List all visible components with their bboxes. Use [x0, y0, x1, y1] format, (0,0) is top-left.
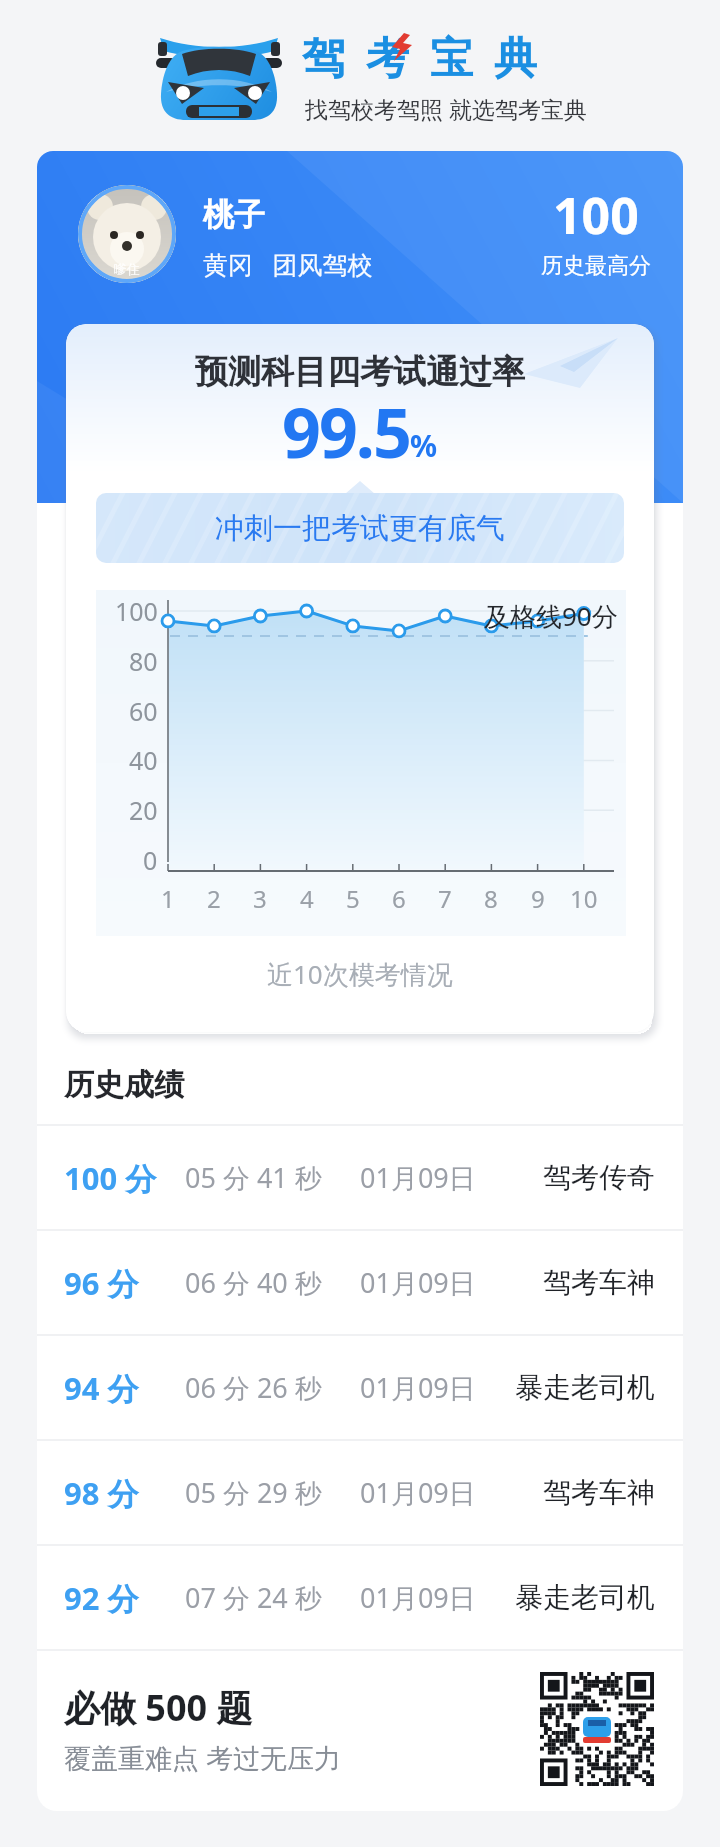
staticText: 7	[438, 882, 452, 914]
staticText: 8	[484, 882, 498, 914]
staticText: 06 分 40 秒	[185, 1264, 322, 1301]
staticText: 黄冈 团风驾校	[203, 247, 373, 281]
staticText: 60	[129, 694, 158, 728]
staticText: 桃子	[203, 195, 265, 234]
staticText: 01月09日	[360, 1159, 476, 1196]
staticText: 嗲住	[114, 261, 140, 277]
button[interactable]: 嗲住	[78, 185, 176, 283]
staticText: 驾考车神	[543, 1265, 655, 1300]
staticText: 近10次模考情况	[267, 956, 453, 992]
button[interactable]: 96 分	[37, 1231, 683, 1334]
staticText: 找驾校考驾照 就选驾考宝典	[305, 93, 587, 124]
staticText: 驾	[302, 32, 345, 86]
staticText: 98 分	[64, 1472, 139, 1514]
staticText: 覆盖重难点 考过无压力	[64, 1739, 342, 1776]
button[interactable]: 必做 500 题	[37, 1651, 683, 1811]
button[interactable]: 94 分	[37, 1336, 683, 1439]
staticText: 20	[129, 793, 158, 827]
staticText: 94 分	[64, 1367, 139, 1409]
staticText: %	[410, 425, 438, 466]
staticText: 99.5	[282, 385, 410, 478]
staticText: 宝	[430, 32, 473, 86]
staticText: 6	[392, 882, 406, 914]
staticText: 100 分	[64, 1157, 157, 1199]
staticText: 3	[253, 882, 267, 914]
staticText: 01月09日	[360, 1579, 476, 1616]
staticText: 5	[346, 882, 360, 914]
staticText: 2	[207, 882, 221, 914]
staticText: 07 分 24 秒	[185, 1579, 322, 1616]
staticText: 冲刺一把考试更有底气	[215, 510, 505, 547]
staticText: 100	[553, 181, 639, 243]
staticText: 预测科目四考试通过率	[195, 351, 525, 393]
staticText: 80	[129, 644, 158, 678]
button[interactable]: 冲刺一把考试更有底气	[96, 493, 624, 563]
staticText: 06 分 26 秒	[185, 1369, 322, 1406]
button[interactable]: 100 分	[37, 1126, 683, 1229]
staticText: 0	[143, 843, 158, 877]
staticText: 05 分 29 秒	[185, 1474, 322, 1511]
staticText: 及格线90分	[484, 598, 618, 634]
staticText: 驾考车神	[543, 1475, 655, 1510]
staticText: 典	[494, 32, 537, 86]
staticText: 40	[129, 743, 158, 777]
staticText: 4	[300, 882, 314, 914]
staticText: 暴走老司机	[515, 1370, 655, 1405]
staticText: 1	[161, 882, 175, 914]
button[interactable]: 92 分	[37, 1546, 683, 1649]
staticText: 01月09日	[360, 1264, 476, 1301]
staticText: 05 分 41 秒	[185, 1159, 322, 1196]
staticText: 92 分	[64, 1577, 139, 1619]
staticText: 历史最高分	[541, 252, 651, 280]
staticText: 必做 500 题	[64, 1683, 253, 1732]
staticText: 考	[366, 32, 409, 86]
staticText: 10	[570, 882, 598, 914]
staticText: 01月09日	[360, 1369, 476, 1406]
staticText: 96 分	[64, 1262, 139, 1304]
staticText: 暴走老司机	[515, 1580, 655, 1615]
staticText: 驾考传奇	[543, 1160, 655, 1195]
button[interactable]: 98 分	[37, 1441, 683, 1544]
staticText: 9	[531, 882, 545, 914]
staticText: 历史成绩	[64, 1066, 184, 1104]
staticText: 100	[115, 594, 158, 628]
staticText: 01月09日	[360, 1474, 476, 1511]
